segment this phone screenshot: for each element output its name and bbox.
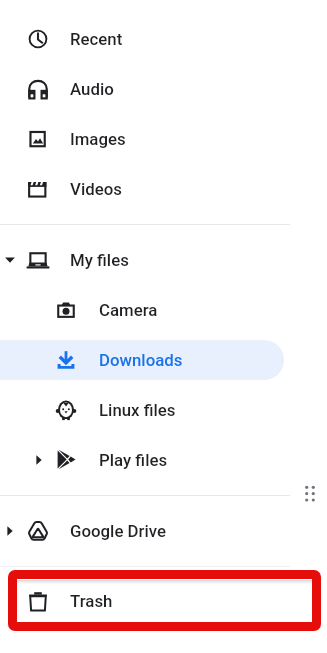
button[interactable]: Trash — [0, 581, 327, 621]
button[interactable]: Expand Play files — [29, 440, 49, 480]
staticText: Images — [70, 129, 126, 149]
button[interactable]: Images — [0, 119, 327, 159]
staticText: Google Drive — [70, 521, 166, 541]
staticText: Downloads — [99, 350, 183, 370]
button[interactable]: Videos — [0, 169, 327, 209]
staticText: Videos — [70, 179, 122, 199]
button[interactable]: Collapse My files — [0, 240, 327, 280]
button[interactable]: Linux files — [0, 390, 327, 430]
button[interactable]: Recent — [0, 19, 327, 59]
staticText: Trash — [70, 591, 113, 611]
staticText: Linux files — [99, 400, 176, 420]
staticText: Recent — [70, 29, 123, 49]
button[interactable]: Audio — [0, 69, 327, 109]
staticText: My files — [70, 250, 129, 270]
button[interactable]: Camera — [0, 290, 327, 330]
staticText: Audio — [70, 79, 114, 99]
button[interactable]: Downloads — [0, 340, 327, 380]
button[interactable]: Expand Google Drive — [0, 511, 327, 551]
button[interactable]: Collapse My files — [0, 240, 20, 280]
staticText: Play files — [99, 450, 168, 470]
staticText: Camera — [99, 300, 158, 320]
button[interactable]: Resize sidebar — [299, 480, 321, 502]
button[interactable]: Expand Play files — [0, 440, 327, 480]
button[interactable]: Expand Google Drive — [0, 511, 20, 551]
